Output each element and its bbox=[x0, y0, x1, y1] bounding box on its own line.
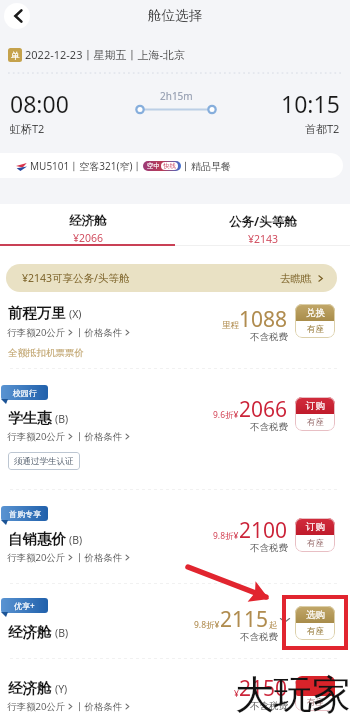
button[interactable]: 订购 bbox=[295, 518, 335, 552]
button[interactable]: 兑换 bbox=[295, 304, 335, 338]
staticText: 须通过学生认证 bbox=[14, 456, 74, 467]
staticText: 丨精品早餐 bbox=[181, 160, 231, 173]
staticText: 大玩家 bbox=[235, 670, 350, 719]
button[interactable]: 校园行 bbox=[0, 368, 350, 489]
staticText: 舱位选择 bbox=[148, 7, 202, 24]
staticText: 有座 bbox=[307, 417, 324, 428]
staticText: 前程万里 bbox=[8, 304, 66, 322]
staticText: (X) bbox=[69, 307, 82, 321]
button[interactable]: 公务/头等舱 bbox=[175, 204, 350, 246]
staticText: 全额抵扣机票票价 bbox=[8, 347, 84, 359]
staticText: 单 bbox=[11, 50, 20, 61]
button[interactable]: 选购 bbox=[295, 606, 335, 640]
staticText: (B) bbox=[55, 626, 69, 640]
button[interactable]: ¥2143可享公务/头等舱 bbox=[6, 264, 337, 292]
staticText: 2100 bbox=[239, 516, 288, 545]
button[interactable]: MU5101丨空客321(窄)丨 bbox=[0, 153, 343, 178]
staticText: 丨价格条件 bbox=[75, 701, 123, 713]
staticText: (B) bbox=[55, 412, 69, 426]
staticText: 丨价格条件 bbox=[75, 327, 123, 339]
staticText: 订购 bbox=[306, 521, 325, 533]
staticText: 2066 bbox=[239, 395, 288, 424]
staticText: 选购 bbox=[306, 609, 325, 621]
staticText: 自销惠价 bbox=[8, 530, 66, 548]
staticText: 学生惠 bbox=[8, 409, 52, 427]
staticText: 行李额20公斤 bbox=[7, 700, 66, 713]
staticText: 不含税费 bbox=[240, 631, 278, 643]
staticText: 经济舱 bbox=[8, 623, 52, 641]
staticText: 2115 bbox=[220, 605, 269, 634]
staticText: ¥2066 bbox=[73, 231, 104, 245]
staticText: 行李额20公斤 bbox=[7, 326, 66, 339]
staticText: 有座 bbox=[307, 538, 324, 549]
staticText: 1088 bbox=[239, 305, 288, 334]
staticText: (B) bbox=[69, 533, 83, 547]
staticText: 2150 bbox=[239, 674, 288, 703]
button[interactable]: 经济舱 bbox=[0, 658, 350, 722]
staticText: 里程 bbox=[222, 320, 239, 331]
button[interactable]: 订购 bbox=[295, 397, 335, 431]
staticText: 行李额20公斤 bbox=[7, 430, 66, 443]
staticText: 首购专享 bbox=[9, 509, 41, 519]
staticText: 首都T2 bbox=[305, 121, 340, 136]
staticText: (Y) bbox=[55, 682, 68, 696]
staticText: 2022-12-23丨星期五丨上海-北京 bbox=[25, 47, 185, 62]
staticText: 有座 bbox=[307, 697, 324, 708]
staticText: 9.8折¥ bbox=[213, 530, 239, 542]
staticText: 订购 bbox=[306, 680, 325, 692]
staticText: 经济舱 bbox=[69, 213, 107, 229]
button[interactable]: 经济舱 bbox=[0, 204, 175, 246]
staticText: ¥ bbox=[234, 688, 239, 700]
staticText: 不含税费 bbox=[250, 331, 288, 343]
button[interactable]: 前程万里 bbox=[0, 300, 350, 368]
staticText: ¥2143可享公务/头等舱 bbox=[22, 271, 130, 285]
staticText: 10:15 bbox=[281, 88, 340, 119]
button[interactable]: 首购专享 bbox=[0, 489, 350, 583]
staticText: 行李额20公斤 bbox=[7, 551, 66, 564]
staticText: 丨价格条件 bbox=[75, 431, 123, 443]
staticText: 不含税费 bbox=[250, 421, 288, 433]
staticText: 不含税费 bbox=[250, 700, 288, 712]
button[interactable]: 须通过学生认证 bbox=[8, 452, 80, 470]
staticText: 虹桥T2 bbox=[10, 121, 45, 136]
button[interactable]: Back bbox=[4, 3, 30, 29]
staticText: 去瞧瞧 bbox=[280, 272, 312, 285]
button[interactable]: 优享+ bbox=[0, 583, 350, 658]
staticText: MU5101丨空客321(窄)丨 bbox=[30, 159, 143, 173]
staticText: 优享+ bbox=[14, 600, 35, 611]
staticText: 丨价格条件 bbox=[75, 552, 123, 564]
staticText: 2h15m bbox=[160, 89, 193, 103]
staticText: 有座 bbox=[307, 324, 324, 335]
staticText: 不含税费 bbox=[250, 542, 288, 554]
staticText: 起 bbox=[269, 620, 278, 631]
staticText: 校园行 bbox=[13, 388, 37, 398]
staticText: ¥2143 bbox=[248, 232, 279, 246]
staticText: 订购 bbox=[306, 400, 325, 412]
staticText: 9.8折¥ bbox=[194, 619, 220, 631]
staticText: 兑换 bbox=[306, 307, 325, 319]
staticText: 9.6折¥ bbox=[213, 409, 239, 421]
staticText: 08:00 bbox=[10, 88, 69, 119]
staticText: 公务/头等舱 bbox=[229, 213, 297, 230]
staticText: 经济舱 bbox=[8, 679, 52, 697]
button[interactable]: 订购 bbox=[295, 677, 335, 711]
staticText: 空中 bbox=[147, 162, 160, 170]
staticText: 有座 bbox=[307, 626, 324, 637]
staticText: 快线 bbox=[163, 162, 176, 170]
